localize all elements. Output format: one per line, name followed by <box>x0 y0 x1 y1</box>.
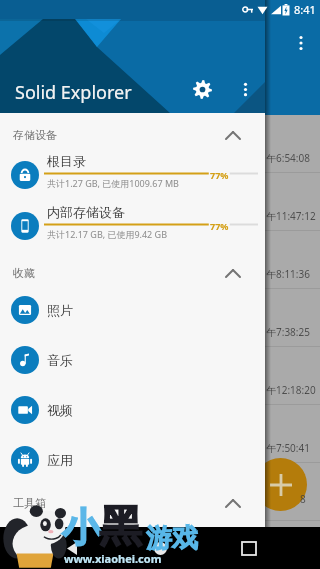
staticText: 黑 <box>99 500 142 554</box>
button[interactable]: 照片 <box>0 285 265 335</box>
staticText: Solid Explorer <box>15 80 132 105</box>
button[interactable]: Add <box>254 458 307 511</box>
staticText: 游戏 <box>146 522 198 555</box>
staticText: www.xiaohei.com <box>64 551 162 566</box>
staticText: 午6:54:08 <box>266 151 310 165</box>
staticText: 共计12.17 GB, 已使用9.42 GB <box>47 228 168 240</box>
staticText: 8:41 <box>294 2 316 17</box>
staticText: 午11:47:12 <box>266 209 316 223</box>
staticText: 午8:11:36 <box>266 267 310 281</box>
staticText: 8 <box>300 492 306 506</box>
button[interactable]: Settings <box>190 77 215 102</box>
staticText: 工具箱 <box>13 496 46 510</box>
staticText: 照片 <box>47 302 73 318</box>
button[interactable]: 根目录 <box>0 149 265 200</box>
button[interactable]: Recent apps <box>235 534 263 562</box>
button[interactable]: Collapse section <box>220 122 246 148</box>
staticText: 视频 <box>47 402 73 418</box>
staticText: 小 <box>62 503 101 552</box>
button[interactable]: 音乐 <box>0 335 265 385</box>
staticText: 午7:50:41 <box>266 441 310 455</box>
button[interactable]: Back <box>58 534 86 562</box>
button[interactable]: 视频 <box>0 385 265 435</box>
staticText: 77% <box>210 220 229 232</box>
staticText: 音乐 <box>47 352 73 368</box>
staticText: 77% <box>210 169 229 181</box>
button[interactable]: 内部存储设备 <box>0 200 265 251</box>
staticText: 收藏 <box>13 266 35 280</box>
staticText: 内部存储设备 <box>47 204 125 220</box>
button[interactable]: More options <box>288 30 314 56</box>
staticText: 午12:18:20 <box>266 383 316 397</box>
staticText: 共计1.27 GB, 已使用1009.67 MB <box>47 177 179 189</box>
button[interactable]: Collapse section <box>220 260 246 286</box>
staticText: 存储设备 <box>13 128 57 142</box>
staticText: 应用 <box>47 452 73 468</box>
button[interactable]: 应用 <box>0 435 265 485</box>
button[interactable]: Collapse section <box>220 490 246 516</box>
staticText: 午7:38:25 <box>266 325 310 339</box>
button[interactable]: Home <box>146 534 174 562</box>
button[interactable]: More options <box>233 77 257 101</box>
staticText: 根目录 <box>47 153 86 169</box>
